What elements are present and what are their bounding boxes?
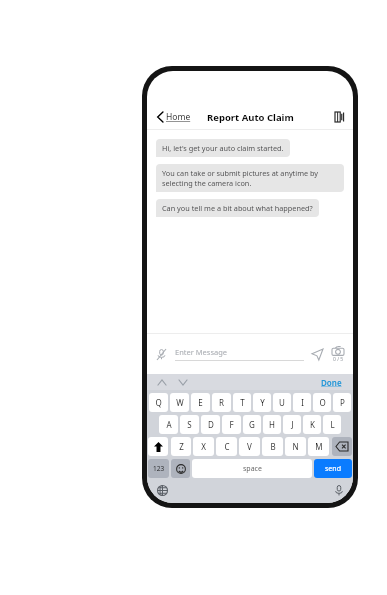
button[interactable]: D xyxy=(201,415,220,434)
staticText: S xyxy=(187,419,192,430)
button[interactable]: R xyxy=(212,393,231,412)
staticText: X xyxy=(201,441,206,452)
staticText: O xyxy=(319,397,326,408)
staticText: G xyxy=(249,419,255,430)
staticText: U xyxy=(279,397,285,408)
button[interactable]: Switch keyboard xyxy=(155,483,170,498)
staticText: C xyxy=(224,441,230,452)
staticText: V xyxy=(247,441,252,452)
button[interactable]: Z xyxy=(171,437,191,456)
button[interactable]: O xyxy=(313,393,331,412)
button[interactable]: T xyxy=(233,393,251,412)
button[interactable]: Camera xyxy=(331,345,345,364)
staticText: Q xyxy=(155,397,162,408)
button[interactable]: M xyxy=(308,437,329,456)
staticText: 123 xyxy=(153,464,165,473)
button[interactable]: Q xyxy=(149,393,168,412)
staticText: Can you tell me a bit about what happene… xyxy=(162,203,313,213)
button[interactable]: Accessibility xyxy=(332,109,347,125)
button[interactable]: Home xyxy=(155,108,193,126)
button[interactable]: Next field xyxy=(177,378,189,387)
button[interactable]: C xyxy=(216,437,237,456)
staticText: E xyxy=(198,397,203,408)
button[interactable]: X xyxy=(193,437,214,456)
button[interactable]: Y xyxy=(253,393,271,412)
button[interactable]: P xyxy=(333,393,351,412)
staticText: T xyxy=(240,397,245,408)
button[interactable]: L xyxy=(323,415,341,434)
staticText: D xyxy=(208,419,214,430)
button[interactable]: E xyxy=(191,393,210,412)
button[interactable]: Emoji xyxy=(171,459,190,478)
staticText: Y xyxy=(260,397,265,408)
staticText: L xyxy=(330,419,335,430)
button[interactable]: Previous field xyxy=(156,378,168,387)
staticText: send xyxy=(325,464,341,474)
staticText: K xyxy=(310,419,315,430)
button[interactable]: Shift xyxy=(148,437,168,456)
button[interactable]: V xyxy=(239,437,260,456)
staticText: N xyxy=(292,441,299,452)
button[interactable]: Backspace xyxy=(332,437,352,456)
button[interactable]: H xyxy=(263,415,281,434)
staticText: Report Auto Claim xyxy=(207,111,294,124)
staticText: Home xyxy=(166,111,191,123)
button[interactable]: send xyxy=(314,459,352,478)
button[interactable]: Dictate xyxy=(333,483,345,498)
staticText: P xyxy=(340,397,345,408)
staticText: I xyxy=(301,397,304,408)
button[interactable]: space xyxy=(192,459,312,478)
button[interactable]: K xyxy=(303,415,321,434)
staticText: R xyxy=(219,397,224,408)
button[interactable]: Microphone muted xyxy=(155,347,168,362)
staticText: Done xyxy=(321,377,342,388)
staticText: B xyxy=(270,441,276,452)
staticText: You can take or submit pictures at anyti… xyxy=(162,168,338,188)
staticText: Hi, let's get your auto claim started. xyxy=(162,143,284,153)
button[interactable]: Done xyxy=(319,376,344,389)
button[interactable]: W xyxy=(170,393,189,412)
button[interactable]: A xyxy=(159,415,178,434)
button[interactable]: G xyxy=(243,415,261,434)
button[interactable]: U xyxy=(273,393,291,412)
button[interactable]: F xyxy=(222,415,241,434)
staticText: W xyxy=(176,397,184,408)
staticText: M xyxy=(315,441,323,452)
staticText: space xyxy=(243,464,262,474)
staticText: Enter Message xyxy=(175,347,228,357)
staticText: H xyxy=(269,419,275,430)
button[interactable]: Send xyxy=(310,347,325,362)
staticText: F xyxy=(229,419,234,430)
button[interactable]: I xyxy=(293,393,311,412)
button[interactable]: N xyxy=(285,437,306,456)
staticText: Z xyxy=(179,441,184,452)
staticText: A xyxy=(166,419,172,430)
staticText: 0 / 5 xyxy=(333,356,344,363)
button[interactable]: S xyxy=(180,415,199,434)
button[interactable]: J xyxy=(283,415,301,434)
button[interactable]: B xyxy=(262,437,283,456)
button[interactable]: 123 xyxy=(148,459,169,478)
staticText: J xyxy=(291,419,294,430)
